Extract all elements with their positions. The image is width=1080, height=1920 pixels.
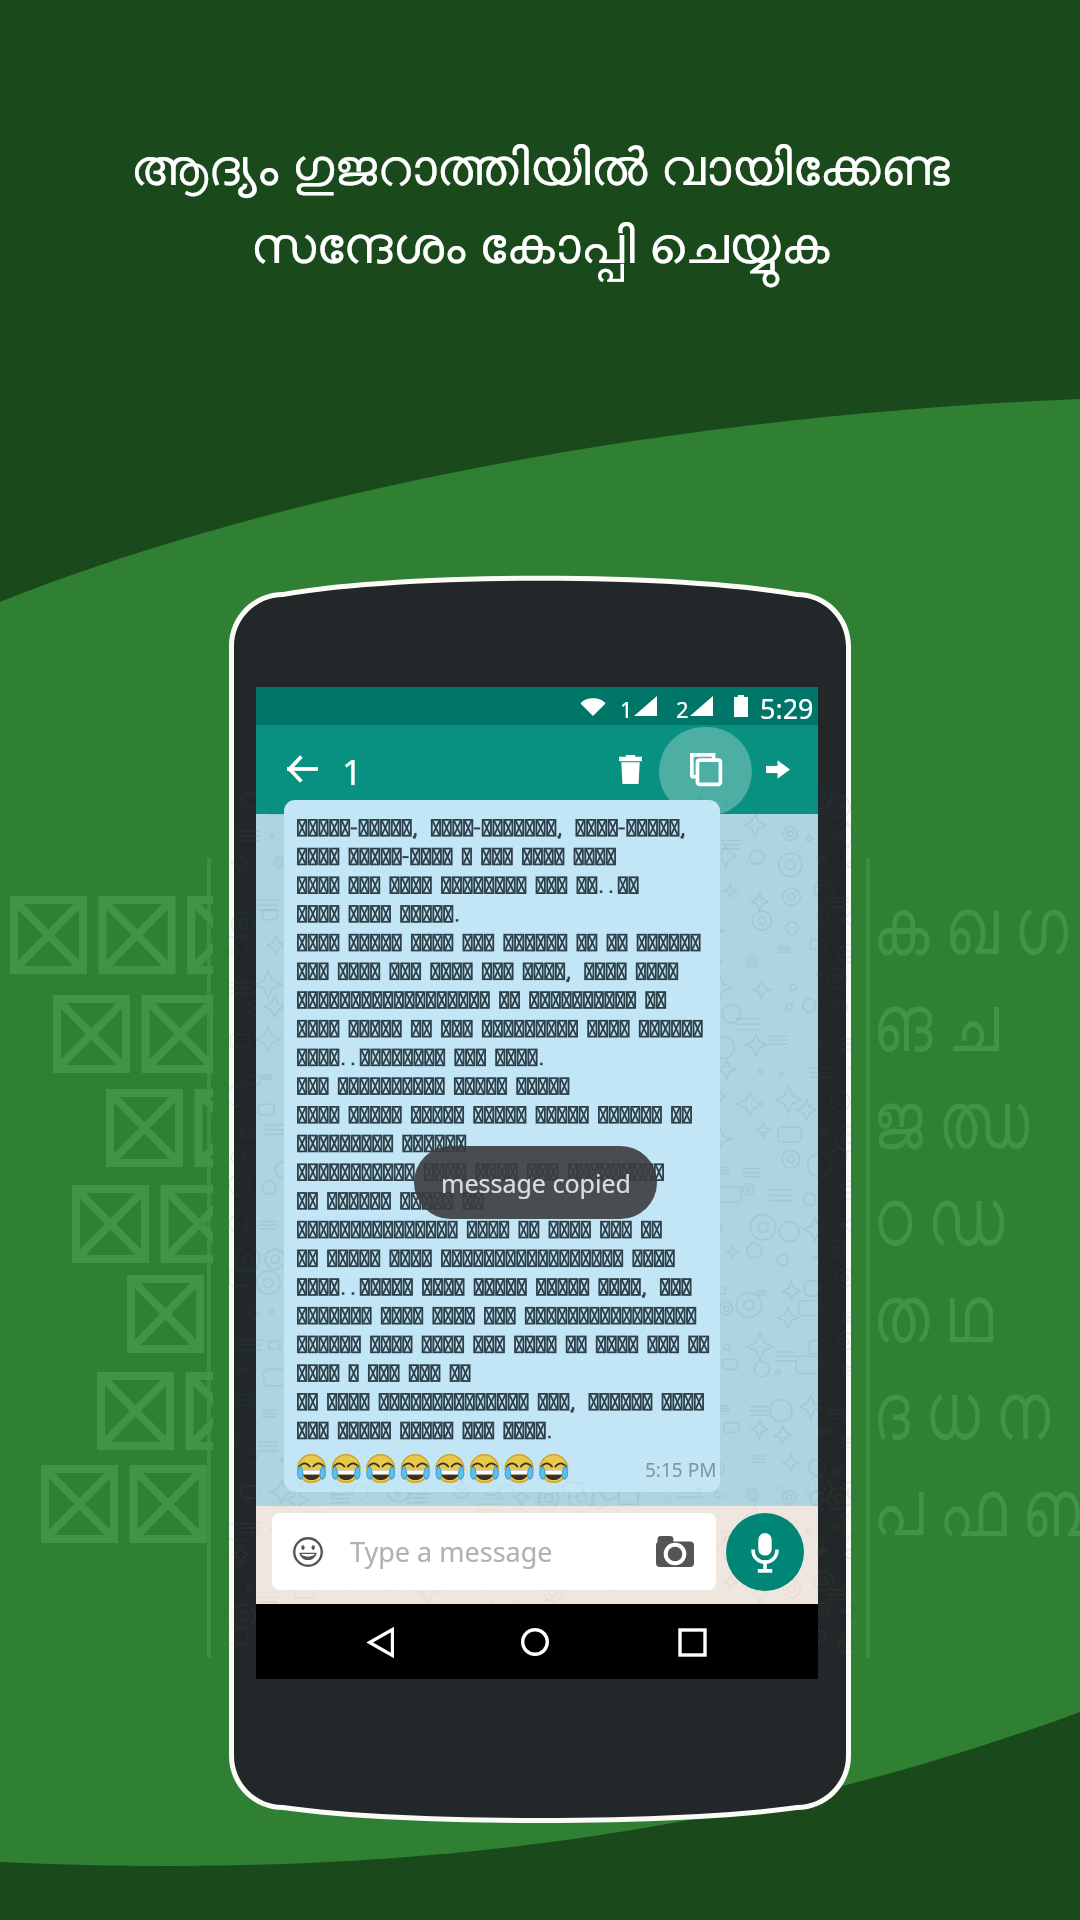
staticText: ആദ്യം ഗുജറാത്തിയിൽ വായിക്കേണ്ട സന്ദേശം ക… bbox=[0, 130, 1080, 278]
staticText: 5:29 bbox=[760, 690, 814, 727]
staticText: Type a message bbox=[350, 1533, 553, 1570]
staticText: ക ഖ ഗ bbox=[873, 868, 1068, 965]
staticText: പ ഫ ബ bbox=[873, 1450, 1080, 1547]
staticText: 5:15 PM bbox=[645, 1457, 717, 1483]
button[interactable]: Record voice message bbox=[726, 1513, 804, 1591]
button[interactable]: Copy bbox=[677, 741, 733, 797]
button[interactable]: Back bbox=[353, 1620, 409, 1664]
button[interactable]: 1 bbox=[342, 748, 363, 796]
staticText: ഠ ഡ bbox=[873, 1159, 1005, 1256]
staticText: 1 bbox=[620, 694, 633, 724]
staticText: 2 bbox=[676, 694, 689, 724]
staticText: message copied bbox=[441, 1166, 631, 1200]
button[interactable]: Home bbox=[507, 1620, 563, 1664]
button[interactable]: Delete bbox=[602, 741, 658, 797]
button[interactable]: Back bbox=[273, 741, 329, 797]
button[interactable]: Forward bbox=[750, 741, 806, 797]
staticText: ങ ച bbox=[873, 965, 999, 1062]
staticText: ജ ഝ bbox=[873, 1062, 1029, 1159]
staticText: ത ഥ bbox=[873, 1256, 994, 1353]
button[interactable]: Recent apps bbox=[664, 1620, 720, 1664]
button[interactable]: Type a message bbox=[272, 1513, 716, 1590]
staticText: ദ ധ ന bbox=[873, 1353, 1051, 1450]
button[interactable]: 5:15 PM bbox=[284, 800, 720, 1492]
